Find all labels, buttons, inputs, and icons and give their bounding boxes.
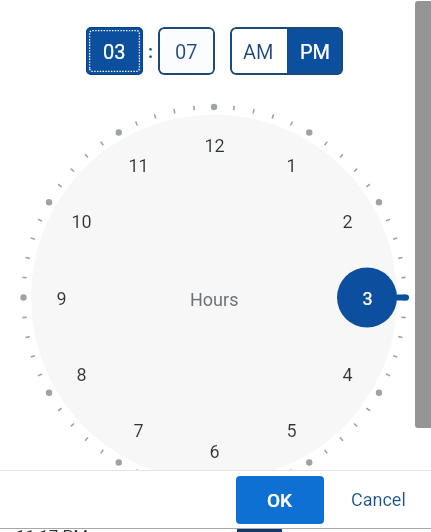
button[interactable]: 9: [41, 282, 81, 314]
button[interactable]: 2: [327, 205, 367, 237]
button[interactable]: 4: [327, 358, 367, 390]
button[interactable]: PM: [287, 27, 343, 75]
button[interactable]: 1: [271, 149, 311, 181]
staticText: AM: [243, 40, 274, 63]
staticText: 07: [175, 40, 198, 63]
button[interactable]: 7: [118, 414, 158, 446]
button[interactable]: 3: [347, 282, 387, 314]
button[interactable]: 5: [271, 414, 311, 446]
staticText: 9: [56, 288, 67, 309]
staticText: PM: [300, 40, 331, 63]
staticText: Cancel: [351, 489, 406, 510]
staticText: 6: [209, 441, 220, 462]
button[interactable]: AM: [230, 27, 287, 75]
staticText: 3: [362, 288, 373, 309]
button[interactable]: Cancel: [336, 476, 420, 523]
staticText: Hours: [190, 289, 239, 310]
button[interactable]: 12: [194, 129, 234, 161]
staticText: 11: [128, 155, 149, 176]
button[interactable]: 8: [61, 358, 101, 390]
button[interactable]: 6: [194, 435, 234, 467]
staticText: 11:17 PM: [16, 526, 89, 532]
staticText: 1: [286, 155, 297, 176]
staticText: 8: [76, 364, 87, 385]
staticText: 2: [342, 211, 353, 232]
staticText: :: [148, 41, 154, 62]
staticText: OK: [267, 489, 293, 511]
button[interactable]: OK: [236, 476, 324, 524]
staticText: 03: [103, 40, 126, 63]
staticText: 7: [133, 420, 144, 441]
button[interactable]: 03: [86, 27, 143, 75]
staticText: 5: [286, 420, 297, 441]
staticText: 4: [342, 364, 353, 385]
staticText: 10: [71, 211, 92, 232]
staticText: 12: [204, 135, 225, 156]
button[interactable]: 10: [61, 205, 101, 237]
button[interactable]: 11: [118, 149, 158, 181]
button[interactable]: 07: [158, 27, 215, 75]
